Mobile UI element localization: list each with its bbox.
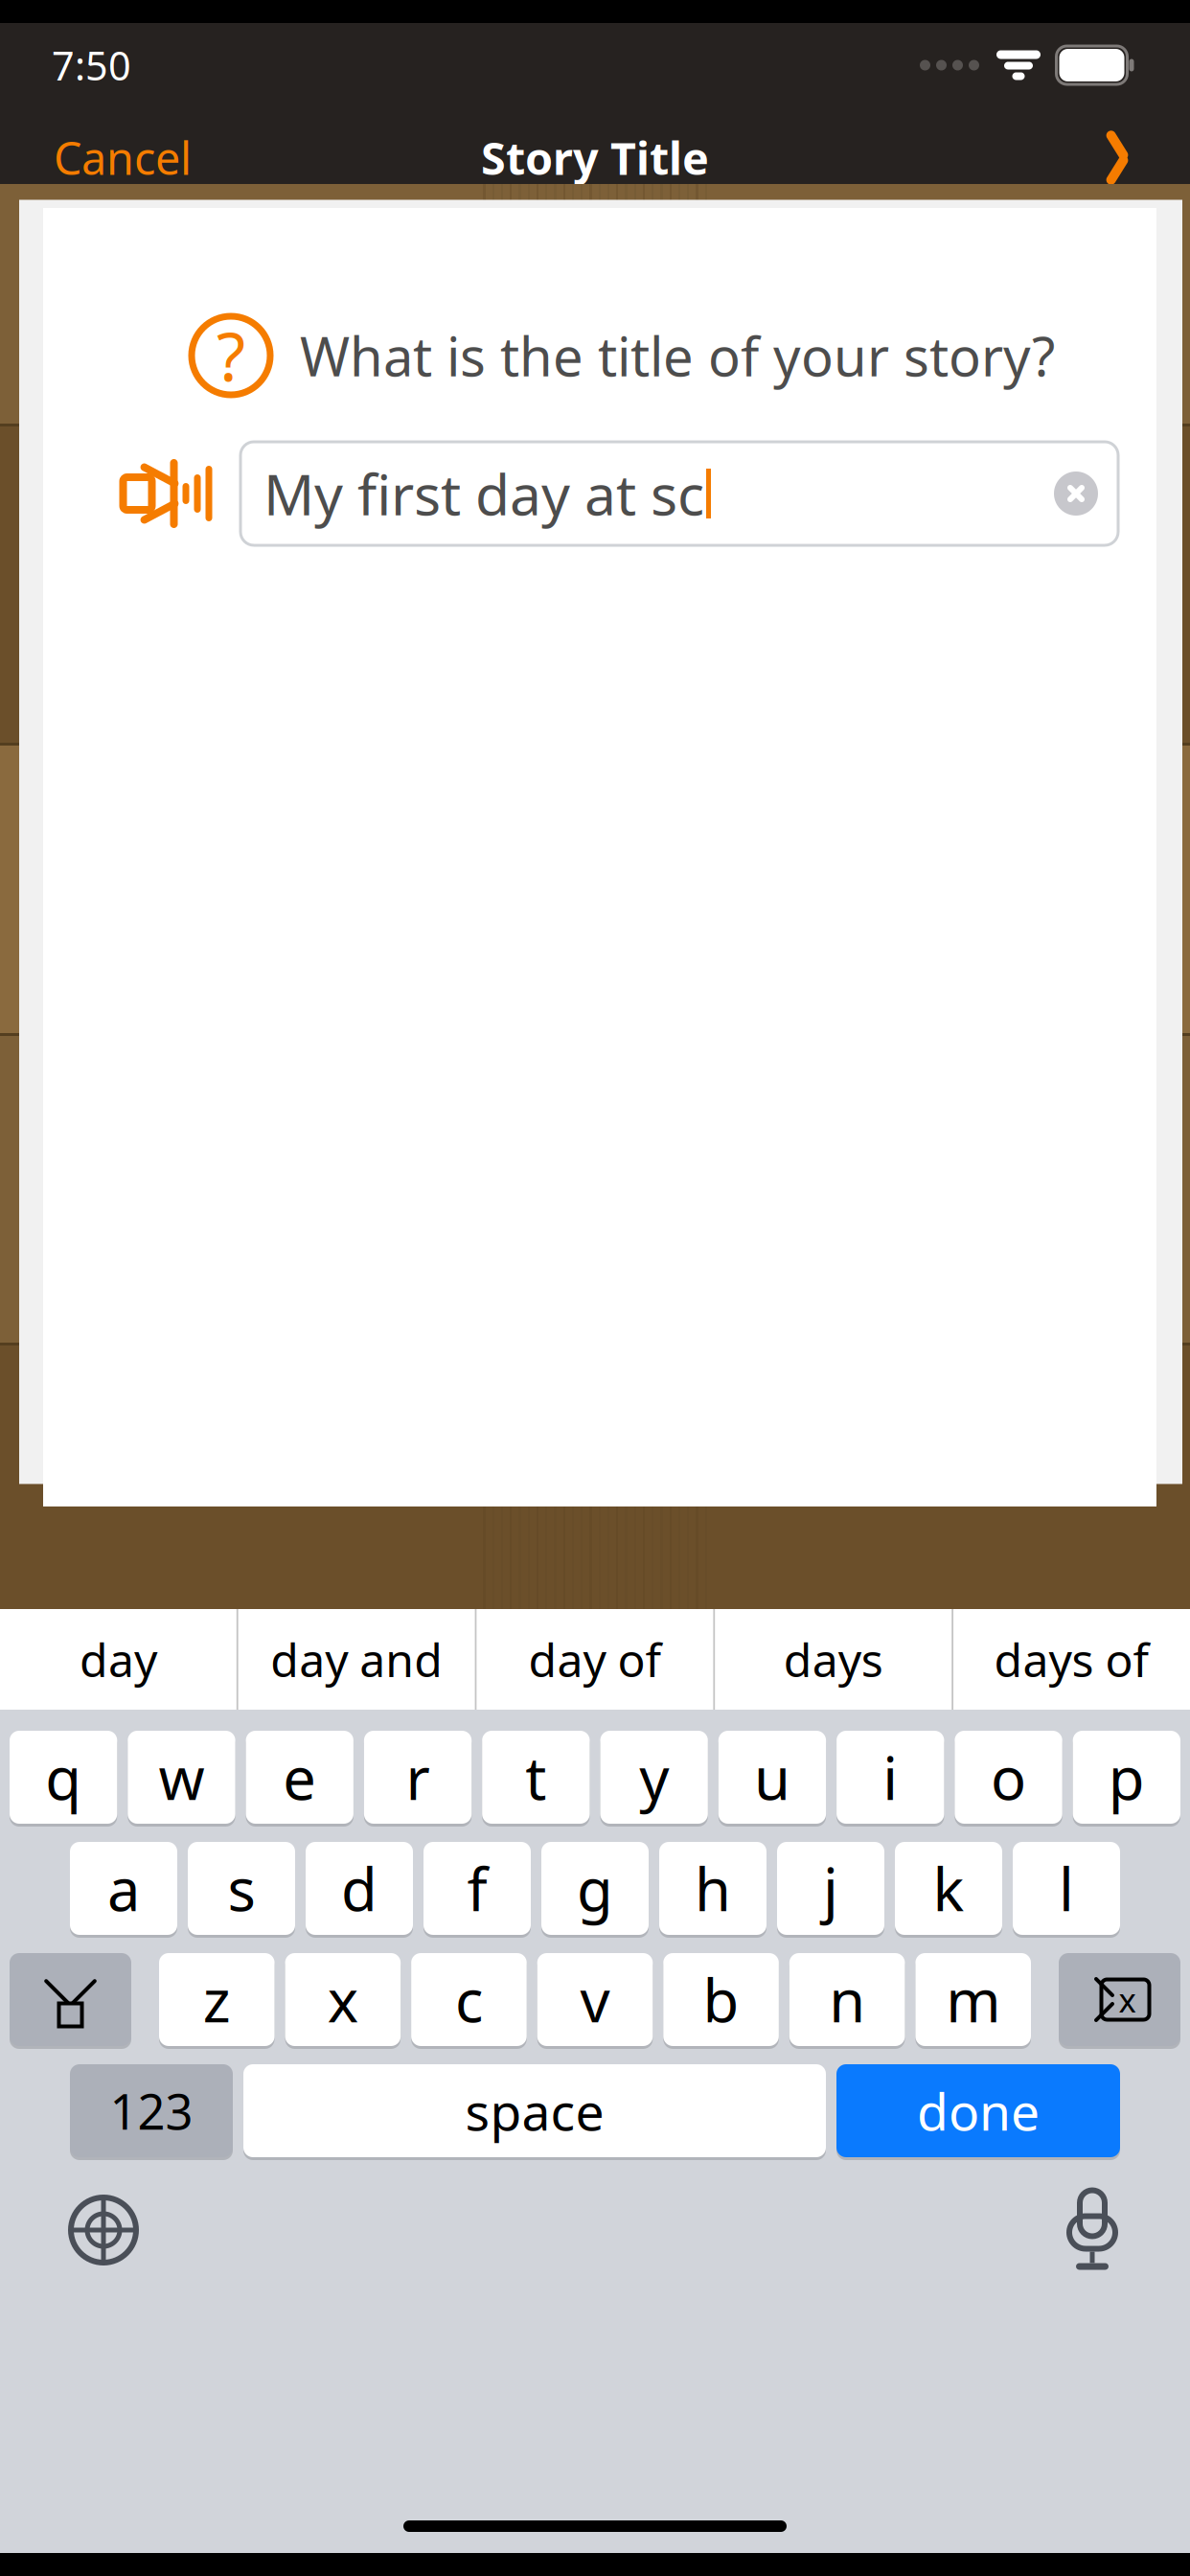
button[interactable]: q <box>10 1731 117 1824</box>
button[interactable]: day and <box>238 1609 475 1710</box>
button[interactable]: Shift <box>10 1953 131 2046</box>
button[interactable]: Read aloud <box>110 448 225 539</box>
button[interactable]: m <box>915 1953 1031 2046</box>
staticText: done <box>917 2077 1040 2145</box>
staticText: q <box>45 1738 82 1816</box>
staticText: y <box>639 1738 669 1816</box>
staticText: Cancel <box>54 128 192 187</box>
button[interactable]: day <box>0 1609 236 1710</box>
staticText: b <box>703 1961 739 2039</box>
button[interactable]: d <box>306 1842 413 1935</box>
button[interactable]: k <box>895 1842 1002 1935</box>
staticText: a <box>107 1849 140 1927</box>
staticText: c <box>455 1961 483 2039</box>
staticText: My first day at sc <box>263 456 704 531</box>
staticText: j <box>823 1849 838 1927</box>
button[interactable]: c <box>411 1953 527 2046</box>
staticText: k <box>933 1849 964 1927</box>
staticText: i <box>883 1738 898 1816</box>
staticText: day of <box>528 1629 662 1690</box>
button[interactable]: space <box>243 2064 826 2157</box>
staticText: What is the title of your story? <box>300 320 1055 391</box>
button[interactable]: t <box>482 1731 590 1824</box>
button[interactable]: v <box>537 1953 653 2046</box>
button[interactable]: g <box>541 1842 649 1935</box>
staticText: ? <box>217 311 245 400</box>
button[interactable]: Dictation <box>1050 2184 1134 2276</box>
button[interactable]: 123 <box>70 2064 233 2157</box>
staticText: o <box>991 1738 1026 1816</box>
button[interactable]: r <box>364 1731 472 1824</box>
staticText: days <box>784 1629 883 1690</box>
staticText: h <box>695 1849 731 1927</box>
staticText: v <box>580 1961 610 2039</box>
button[interactable]: My first day at sc <box>240 442 1118 545</box>
button[interactable]: y <box>600 1731 708 1824</box>
button[interactable]: days of <box>954 1609 1190 1710</box>
button[interactable]: f <box>423 1842 531 1935</box>
staticText: p <box>1108 1738 1145 1816</box>
staticText: s <box>228 1849 255 1927</box>
button[interactable]: w <box>128 1731 235 1824</box>
staticText: f <box>467 1849 487 1927</box>
staticText: space <box>465 2077 604 2145</box>
button[interactable]: u <box>718 1731 826 1824</box>
staticText: n <box>829 1961 865 2039</box>
staticText: l <box>1059 1849 1074 1927</box>
button[interactable]: s <box>188 1842 295 1935</box>
staticText: Story Title <box>481 128 709 187</box>
staticText: e <box>283 1738 316 1816</box>
staticText: x <box>1119 1978 1136 2022</box>
button[interactable]: l <box>1013 1842 1120 1935</box>
staticText: days of <box>994 1629 1149 1690</box>
staticText: r <box>406 1738 430 1816</box>
button[interactable]: done <box>836 2064 1120 2157</box>
staticText: m <box>946 1961 1000 2039</box>
staticText: t <box>525 1738 547 1816</box>
staticText: x <box>328 1961 358 2039</box>
button[interactable]: p <box>1073 1731 1180 1824</box>
button[interactable]: o <box>955 1731 1062 1824</box>
staticText: u <box>754 1738 790 1816</box>
staticText: z <box>203 1961 231 2039</box>
button[interactable]: x <box>285 1953 401 2046</box>
button[interactable]: e <box>246 1731 353 1824</box>
button[interactable]: h <box>659 1842 767 1935</box>
button[interactable]: a <box>70 1842 177 1935</box>
button[interactable]: n <box>789 1953 905 2046</box>
staticText: 7:50 <box>52 39 131 92</box>
button[interactable]: Cancel <box>34 115 211 201</box>
button[interactable]: i <box>837 1731 944 1824</box>
button[interactable]: Next <box>1079 121 1156 194</box>
button[interactable]: b <box>663 1953 779 2046</box>
staticText: 123 <box>110 2079 193 2143</box>
button[interactable]: z <box>159 1953 275 2046</box>
button[interactable]: day of <box>477 1609 713 1710</box>
button[interactable]: Delete <box>1059 1953 1180 2046</box>
button[interactable]: j <box>777 1842 884 1935</box>
staticText: w <box>158 1738 204 1816</box>
staticText: day and <box>270 1629 443 1690</box>
button[interactable]: Next keyboard <box>56 2186 151 2274</box>
button[interactable]: days <box>715 1609 952 1710</box>
staticText: day <box>79 1629 157 1690</box>
staticText: d <box>341 1849 378 1927</box>
staticText: g <box>577 1849 613 1927</box>
